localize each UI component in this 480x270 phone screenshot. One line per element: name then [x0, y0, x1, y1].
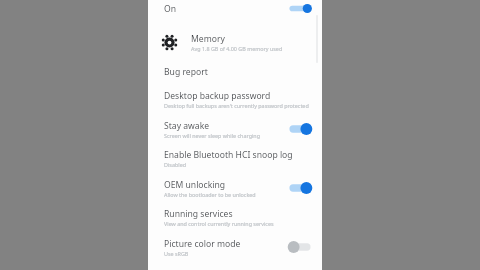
staticText: Bug report	[164, 66, 208, 78]
staticText: Running services	[164, 208, 233, 220]
staticText: Allow the bootloader to be unlocked	[164, 191, 256, 198]
staticText: Disabled	[164, 161, 186, 168]
staticText: View and control currently running servi…	[164, 220, 274, 227]
staticText: Memory	[191, 33, 225, 45]
button[interactable]: Desktop backup password	[148, 90, 322, 109]
button[interactable]: Switch off	[283, 236, 317, 258]
button[interactable]: Picture color mode	[148, 236, 322, 258]
button[interactable]: OEM unlocking	[148, 177, 322, 199]
button[interactable]: Switch on	[283, 177, 317, 199]
staticText: Screen will never sleep while charging	[164, 132, 260, 139]
button[interactable]: Switch on	[283, 118, 317, 140]
staticText: Enable Bluetooth HCI snoop log	[164, 149, 293, 161]
button[interactable]: Bug report	[148, 66, 322, 78]
button[interactable]: Switch on	[283, 0, 317, 17]
staticText: Avg 1.8 GB of 4.00 GB memory used	[191, 45, 283, 52]
staticText: Stay awake	[164, 120, 210, 132]
button[interactable]: Memory	[148, 33, 322, 52]
staticText: Desktop backup password	[164, 90, 271, 102]
staticText: OEM unlocking	[164, 179, 226, 191]
button[interactable]: Running services	[148, 208, 322, 227]
staticText: On	[164, 3, 283, 15]
button[interactable]: Stay awake	[148, 118, 322, 140]
staticText: Picture color mode	[164, 238, 241, 250]
button[interactable]: On	[148, 0, 322, 17]
button[interactable]: Enable Bluetooth HCI snoop log	[148, 149, 322, 168]
staticText: Use sRGB	[164, 250, 189, 257]
staticText: Desktop full backups aren't currently pa…	[164, 102, 309, 109]
